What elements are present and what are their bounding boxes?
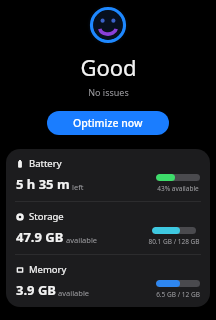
- staticText: No issues: [88, 86, 129, 98]
- staticText: 5 h 35 m: [16, 175, 70, 193]
- button[interactable]: Memory: [6, 255, 210, 307]
- button[interactable]: Storage: [6, 202, 210, 254]
- staticText: left: [72, 182, 84, 192]
- staticText: available: [66, 235, 98, 245]
- staticText: 80.1 GB / 128 GB: [148, 237, 200, 246]
- staticText: Memory: [29, 263, 67, 276]
- staticText: 43% available: [157, 184, 199, 193]
- staticText: Optimize now: [73, 116, 143, 130]
- staticText: Battery: [29, 157, 62, 170]
- button[interactable]: Battery: [6, 149, 210, 201]
- staticText: available: [58, 288, 90, 298]
- staticText: Storage: [29, 210, 64, 223]
- staticText: 3.9 GB: [16, 281, 56, 299]
- staticText: 47.9 GB: [16, 228, 64, 246]
- staticText: Good: [80, 52, 137, 82]
- button[interactable]: Optimize now: [47, 111, 169, 135]
- staticText: 6.5 GB / 12 GB: [156, 290, 200, 299]
- other: Device status good: [89, 6, 127, 44]
